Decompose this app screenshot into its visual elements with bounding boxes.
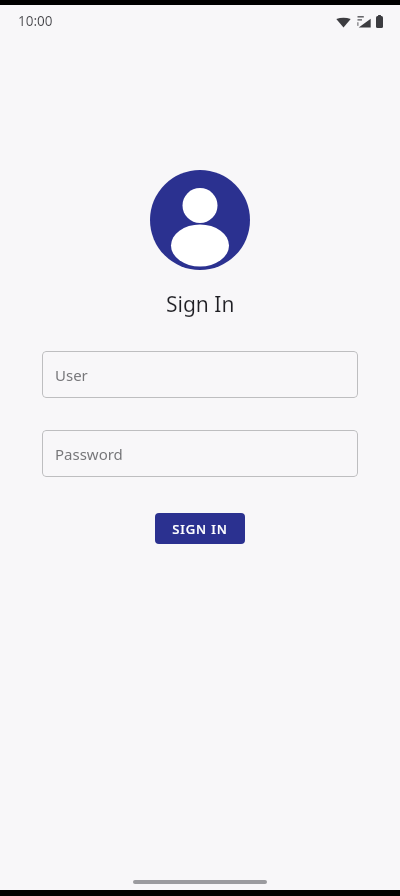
button[interactable]: SIGN IN — [155, 513, 245, 544]
staticText: SIGN IN — [172, 520, 228, 538]
other: Profile avatar — [150, 170, 250, 270]
staticText: User — [55, 365, 88, 385]
button[interactable]: User — [42, 351, 358, 398]
staticText: 10:00 — [18, 12, 53, 30]
button[interactable]: Password — [42, 430, 358, 477]
staticText: Password — [55, 444, 123, 464]
staticText: Sign In — [166, 290, 235, 319]
